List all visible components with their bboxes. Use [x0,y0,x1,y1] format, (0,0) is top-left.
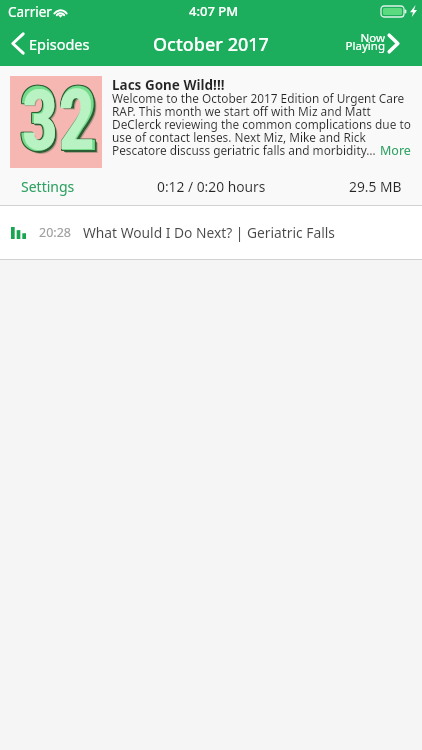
staticText: 20:28 [39,224,71,241]
staticText: October 2017 [153,32,269,57]
staticText: 32 [19,67,98,171]
staticText: Carrier [8,3,52,21]
staticText: 32 [22,71,101,175]
staticText: Playing [345,38,385,54]
staticText: 0:12 / 0:20 hours [157,177,266,196]
staticText: 32 [21,70,100,174]
staticText: Welcome to the October 2017 Edition of U… [112,90,411,159]
button[interactable]: More [376,138,415,163]
staticText: 32 [20,67,99,171]
staticText: 32 [22,72,95,169]
button[interactable]: Now Playing [345,31,422,59]
staticText: Lacs Gone Wild!!! [112,76,225,94]
staticText: Episodes [29,34,90,54]
staticText: More [380,142,411,159]
button[interactable]: 20:28 [0,206,422,259]
staticText: 32 [18,69,97,173]
staticText: 32 [18,68,97,172]
button[interactable]: Settings [21,169,75,204]
staticText: 32 [19,68,98,172]
staticText: 29.5 MB [349,177,402,196]
staticText: What Would I Do Next? | Geriatric Falls [83,223,335,242]
button[interactable]: Back to Episodes [0,29,100,62]
staticText: Settings [21,177,75,196]
staticText: 32 [20,68,99,172]
staticText: Now [360,30,385,46]
staticText: 32 [19,69,98,173]
staticText: 4:07 PM [189,2,239,20]
staticText: 32 [18,67,97,171]
